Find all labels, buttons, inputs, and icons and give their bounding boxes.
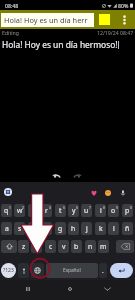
button[interactable]: Change keyboard language	[31, 263, 44, 278]
button[interactable]: Gboard menu	[4, 188, 12, 196]
button[interactable]: o	[108, 204, 119, 217]
staticText: o	[111, 206, 116, 215]
button[interactable]: More options	[118, 10, 131, 29]
staticText: .	[102, 266, 104, 275]
button[interactable]: Undo	[50, 169, 62, 181]
staticText: 5	[63, 205, 65, 209]
staticText: s	[18, 224, 22, 233]
button[interactable]: g	[55, 222, 66, 235]
button[interactable]: c	[45, 240, 56, 253]
staticText: 9	[116, 205, 118, 209]
button[interactable]: Recents	[20, 281, 36, 297]
staticText: p	[125, 206, 130, 215]
staticText: 2	[22, 205, 24, 209]
staticText: h	[71, 224, 76, 233]
button[interactable]: q	[1, 204, 12, 217]
button[interactable]: Enter	[110, 263, 133, 278]
button[interactable]: n	[85, 240, 96, 253]
button[interactable]: Hola! Hoy es un día herr	[1, 13, 94, 27]
button[interactable]: r	[41, 204, 52, 217]
staticText: e	[32, 206, 36, 215]
button[interactable]: j	[81, 222, 92, 235]
button[interactable]: ñ	[122, 222, 133, 235]
staticText: ñ	[125, 224, 130, 233]
button[interactable]: x	[31, 240, 42, 253]
staticText: 8	[103, 205, 105, 209]
button[interactable]: w	[14, 204, 25, 217]
button[interactable]: m	[98, 240, 109, 253]
staticText: Español	[63, 267, 81, 274]
staticText: l	[113, 224, 115, 233]
button[interactable]: Hola! Hoy es un día hermoso!	[0, 38, 135, 51]
staticText: z	[22, 242, 26, 251]
button[interactable]: Redo	[71, 169, 83, 181]
button[interactable]: u	[81, 204, 92, 217]
staticText: d	[31, 224, 36, 233]
staticText: u	[84, 206, 89, 215]
staticText: w	[17, 206, 23, 215]
staticText: n	[88, 242, 93, 251]
staticText: g	[58, 224, 63, 233]
button[interactable]: .	[99, 263, 107, 278]
staticText: 08:48	[5, 2, 19, 9]
button[interactable]: v	[58, 240, 69, 253]
button[interactable]: t	[55, 204, 66, 217]
staticText: b	[74, 242, 79, 251]
staticText: 12/19/24 08:47	[97, 29, 134, 36]
button[interactable]: ?123	[1, 263, 16, 278]
staticText: m	[100, 242, 107, 251]
staticText: t	[59, 206, 62, 215]
staticText: 1	[9, 205, 11, 209]
button[interactable]: h	[68, 222, 79, 235]
staticText: 4	[49, 205, 51, 209]
button[interactable]: Backspace	[116, 240, 134, 253]
button[interactable]: k	[95, 222, 106, 235]
staticText: Hola! Hoy es un día hermoso!	[2, 39, 118, 50]
button[interactable]: Emoji	[104, 189, 112, 197]
button[interactable]: Shift	[1, 240, 17, 253]
button[interactable]: Stickers	[18, 263, 29, 278]
button[interactable]: i	[95, 204, 106, 217]
staticText: 0	[130, 205, 132, 209]
button[interactable]: Hide keyboard	[99, 281, 115, 297]
staticText: v	[62, 242, 66, 251]
button[interactable]: Español	[46, 263, 98, 278]
staticText: Hola! Hoy es un día herr	[4, 15, 88, 25]
button[interactable]: y	[68, 204, 79, 217]
staticText: 6	[76, 205, 78, 209]
button[interactable]: Voice input	[119, 189, 127, 197]
staticText: 7	[89, 205, 91, 209]
button[interactable]: d	[28, 222, 39, 235]
staticText: j	[86, 224, 88, 233]
staticText: f	[45, 224, 48, 233]
staticText: i	[100, 206, 102, 215]
button[interactable]: s	[14, 222, 25, 235]
button[interactable]: p	[122, 204, 133, 217]
button[interactable]: l	[108, 222, 119, 235]
staticText: c	[49, 242, 53, 251]
staticText: 80%	[118, 2, 129, 9]
staticText: y	[72, 206, 76, 215]
button[interactable]: b	[71, 240, 82, 253]
staticText: q	[4, 206, 9, 215]
button[interactable]: a	[1, 222, 12, 235]
button[interactable]: Heart sticker	[90, 189, 98, 197]
staticText: a	[5, 224, 9, 233]
staticText: r	[45, 206, 48, 215]
button[interactable]: f	[41, 222, 52, 235]
staticText: ?123	[3, 267, 14, 274]
button[interactable]: Home	[62, 281, 78, 297]
staticText: k	[99, 224, 103, 233]
button[interactable]: e	[28, 204, 39, 217]
staticText: x	[35, 242, 39, 251]
staticText: Editing	[2, 29, 20, 36]
button[interactable]: z	[18, 240, 29, 253]
